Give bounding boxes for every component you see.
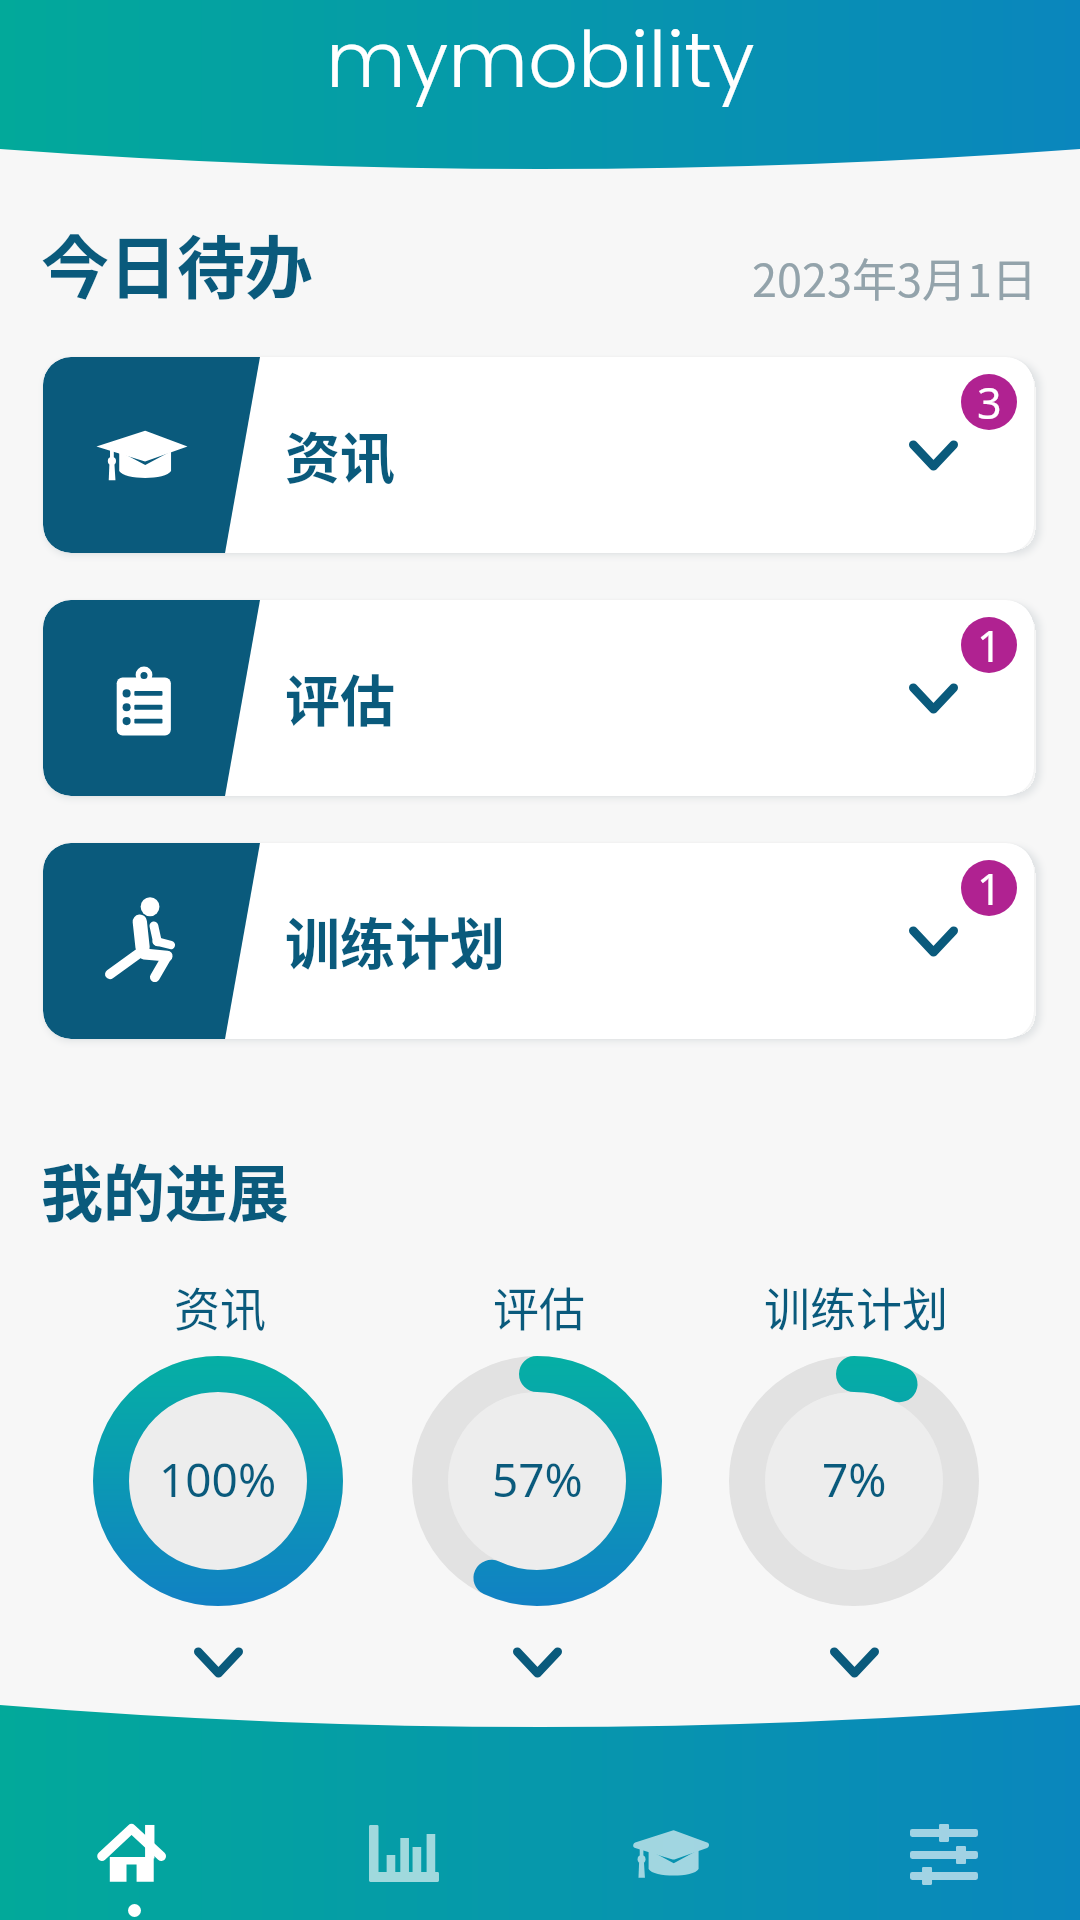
- button[interactable]: Statistics: [270, 1705, 540, 1920]
- staticText: 7%: [822, 1448, 887, 1511]
- button[interactable]: 资讯: [43, 357, 1034, 553]
- staticText: 1: [977, 617, 1002, 672]
- staticText: 资讯: [285, 414, 396, 494]
- staticText: 资讯: [174, 1273, 266, 1339]
- staticText: 训练计划: [764, 1273, 948, 1339]
- staticText: 3: [977, 374, 1002, 429]
- staticText: 评估: [493, 1273, 585, 1339]
- button[interactable]: Settings: [810, 1705, 1080, 1920]
- staticText: 训练计划: [285, 900, 506, 980]
- button[interactable]: 训练计划: [43, 843, 1034, 1039]
- staticText: 评估: [285, 657, 396, 737]
- button[interactable]: 资讯: [50, 1273, 390, 1339]
- button[interactable]: 训练计划: [686, 1273, 1026, 1339]
- staticText: mymobility: [326, 5, 755, 114]
- staticText: 我的进展: [41, 1145, 290, 1235]
- button[interactable]: Home: [0, 1705, 270, 1920]
- staticText: 1: [977, 860, 1002, 915]
- staticText: 2023年3月1日: [752, 245, 1037, 310]
- button[interactable]: 评估: [369, 1273, 709, 1339]
- button[interactable]: Education: [540, 1705, 810, 1920]
- staticText: 今日待办: [41, 214, 314, 312]
- staticText: 100%: [159, 1448, 277, 1511]
- button[interactable]: 评估: [43, 600, 1034, 796]
- staticText: 57%: [492, 1448, 583, 1511]
